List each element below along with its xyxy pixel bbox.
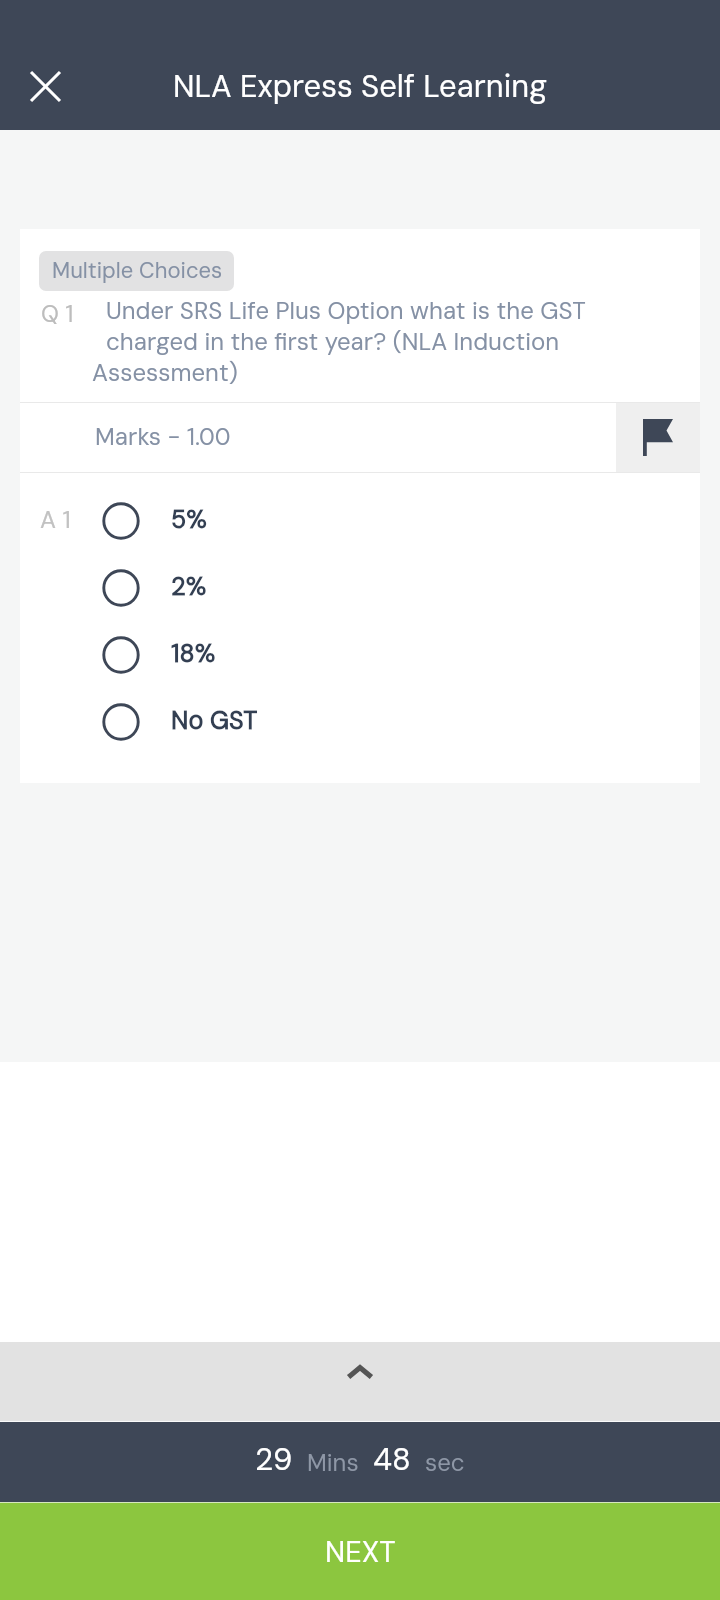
staticText: 29	[255, 1439, 293, 1479]
staticText: NLA Express Self Learning	[173, 66, 547, 106]
button[interactable]: Close	[13, 54, 77, 118]
staticText: 18%	[171, 637, 216, 670]
staticText: sec	[425, 1447, 465, 1478]
button[interactable]: A 1	[20, 487, 700, 554]
button[interactable]: No GST	[20, 688, 700, 755]
staticText: 48	[373, 1439, 411, 1479]
staticText: Q 1	[41, 298, 74, 329]
staticText: NEXT	[325, 1533, 396, 1571]
button[interactable]: 18%	[20, 621, 700, 688]
button[interactable]: Expand panel	[0, 1342, 720, 1421]
button[interactable]: NEXT	[0, 1503, 720, 1600]
staticText: Assessment)	[92, 357, 238, 388]
staticText: A 1	[40, 504, 71, 535]
button[interactable]: 2%	[20, 554, 700, 621]
staticText: No GST	[171, 704, 258, 737]
button[interactable]: Flag question	[616, 403, 700, 472]
staticText: charged in the first year? (NLA Inductio…	[106, 326, 560, 357]
staticText: 5%	[171, 503, 207, 536]
staticText: Multiple Choices	[52, 256, 223, 285]
staticText: Under SRS Life Plus Option what is the G…	[106, 295, 586, 326]
button[interactable]: Multiple Choices	[39, 251, 234, 291]
staticText: Mins	[307, 1447, 359, 1478]
staticText: Marks - 1.00	[95, 421, 616, 452]
staticText: 2%	[171, 570, 207, 603]
